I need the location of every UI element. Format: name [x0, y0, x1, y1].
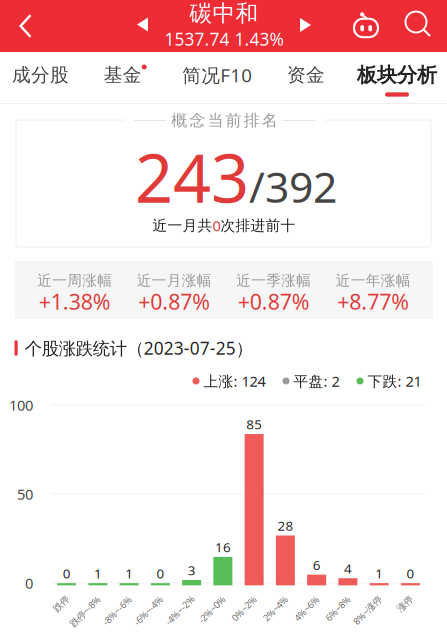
- staticText: +1.38%: [39, 287, 111, 316]
- staticText: 6: [313, 556, 321, 574]
- staticText: 6%~8%: [322, 602, 353, 615]
- button[interactable]: 简况F10: [172, 51, 262, 103]
- staticText: 跌停~-8%: [66, 605, 105, 617]
- staticText: 涨停: [396, 598, 414, 610]
- staticText: 近一月共: [152, 216, 212, 234]
- button[interactable]: 板块分析: [349, 51, 444, 103]
- staticText: 50: [17, 484, 33, 504]
- button[interactable]: Next sector: [289, 2, 321, 48]
- staticText: 简况F10: [182, 63, 252, 87]
- staticText: -2%~0%: [195, 603, 229, 616]
- staticText: 0: [212, 216, 220, 235]
- staticText: 1537.74 1.43%: [164, 27, 283, 50]
- button[interactable]: 基金: [86, 51, 160, 103]
- staticText: 0: [63, 564, 71, 582]
- staticText: 概念当前排名: [171, 111, 278, 130]
- staticText: 近一季涨幅: [236, 271, 311, 289]
- staticText: 1: [375, 564, 383, 582]
- button[interactable]: Previous sector: [126, 1, 158, 47]
- staticText: 0%~2%: [229, 602, 260, 615]
- staticText: 下跌: 21: [367, 371, 421, 391]
- staticText: 8%~涨停: [349, 604, 385, 616]
- staticText: 近一周涨幅: [37, 271, 112, 289]
- staticText: 近一年涨幅: [336, 271, 411, 289]
- staticText: 1: [94, 564, 102, 582]
- button[interactable]: Back: [0, 0, 52, 52]
- staticText: 4: [344, 559, 352, 577]
- staticText: 85: [246, 415, 262, 433]
- staticText: 1: [125, 564, 133, 582]
- staticText: 平盘: 2: [293, 371, 339, 391]
- staticText: 0: [406, 564, 414, 582]
- staticText: 碳中和: [189, 0, 258, 27]
- staticText: 基金: [104, 63, 142, 86]
- staticText: -6%~-4%: [130, 604, 167, 617]
- staticText: 跌停: [52, 598, 70, 610]
- button[interactable]: Search: [397, 0, 439, 50]
- staticText: 板块分析: [357, 63, 437, 87]
- staticText: +0.87%: [238, 287, 310, 316]
- staticText: 28: [277, 517, 293, 534]
- staticText: 243: [135, 133, 249, 221]
- staticText: 16: [215, 538, 231, 556]
- staticText: -4%~-2%: [161, 604, 198, 616]
- staticText: 0: [156, 564, 164, 582]
- button[interactable]: 成分股: [2, 51, 80, 103]
- staticText: 次排进前十: [220, 216, 295, 234]
- staticText: +8.77%: [337, 287, 409, 316]
- button[interactable]: AI assistant: [345, 0, 387, 50]
- staticText: 资金: [287, 63, 325, 86]
- staticText: 成分股: [12, 63, 69, 86]
- staticText: -8%~-6%: [98, 604, 135, 617]
- staticText: 个股涨跌统计（2023-07-25）: [25, 336, 253, 359]
- staticText: 上涨: 124: [203, 371, 265, 391]
- staticText: 2%~4%: [260, 602, 291, 615]
- button[interactable]: 资金: [269, 51, 343, 103]
- staticText: 100: [9, 395, 33, 415]
- staticText: 近一月涨幅: [137, 271, 212, 289]
- staticText: /392: [249, 158, 337, 215]
- staticText: 4%~6%: [291, 602, 322, 615]
- staticText: +0.87%: [138, 287, 210, 316]
- staticText: 3: [188, 561, 196, 579]
- staticText: 0: [25, 573, 33, 593]
